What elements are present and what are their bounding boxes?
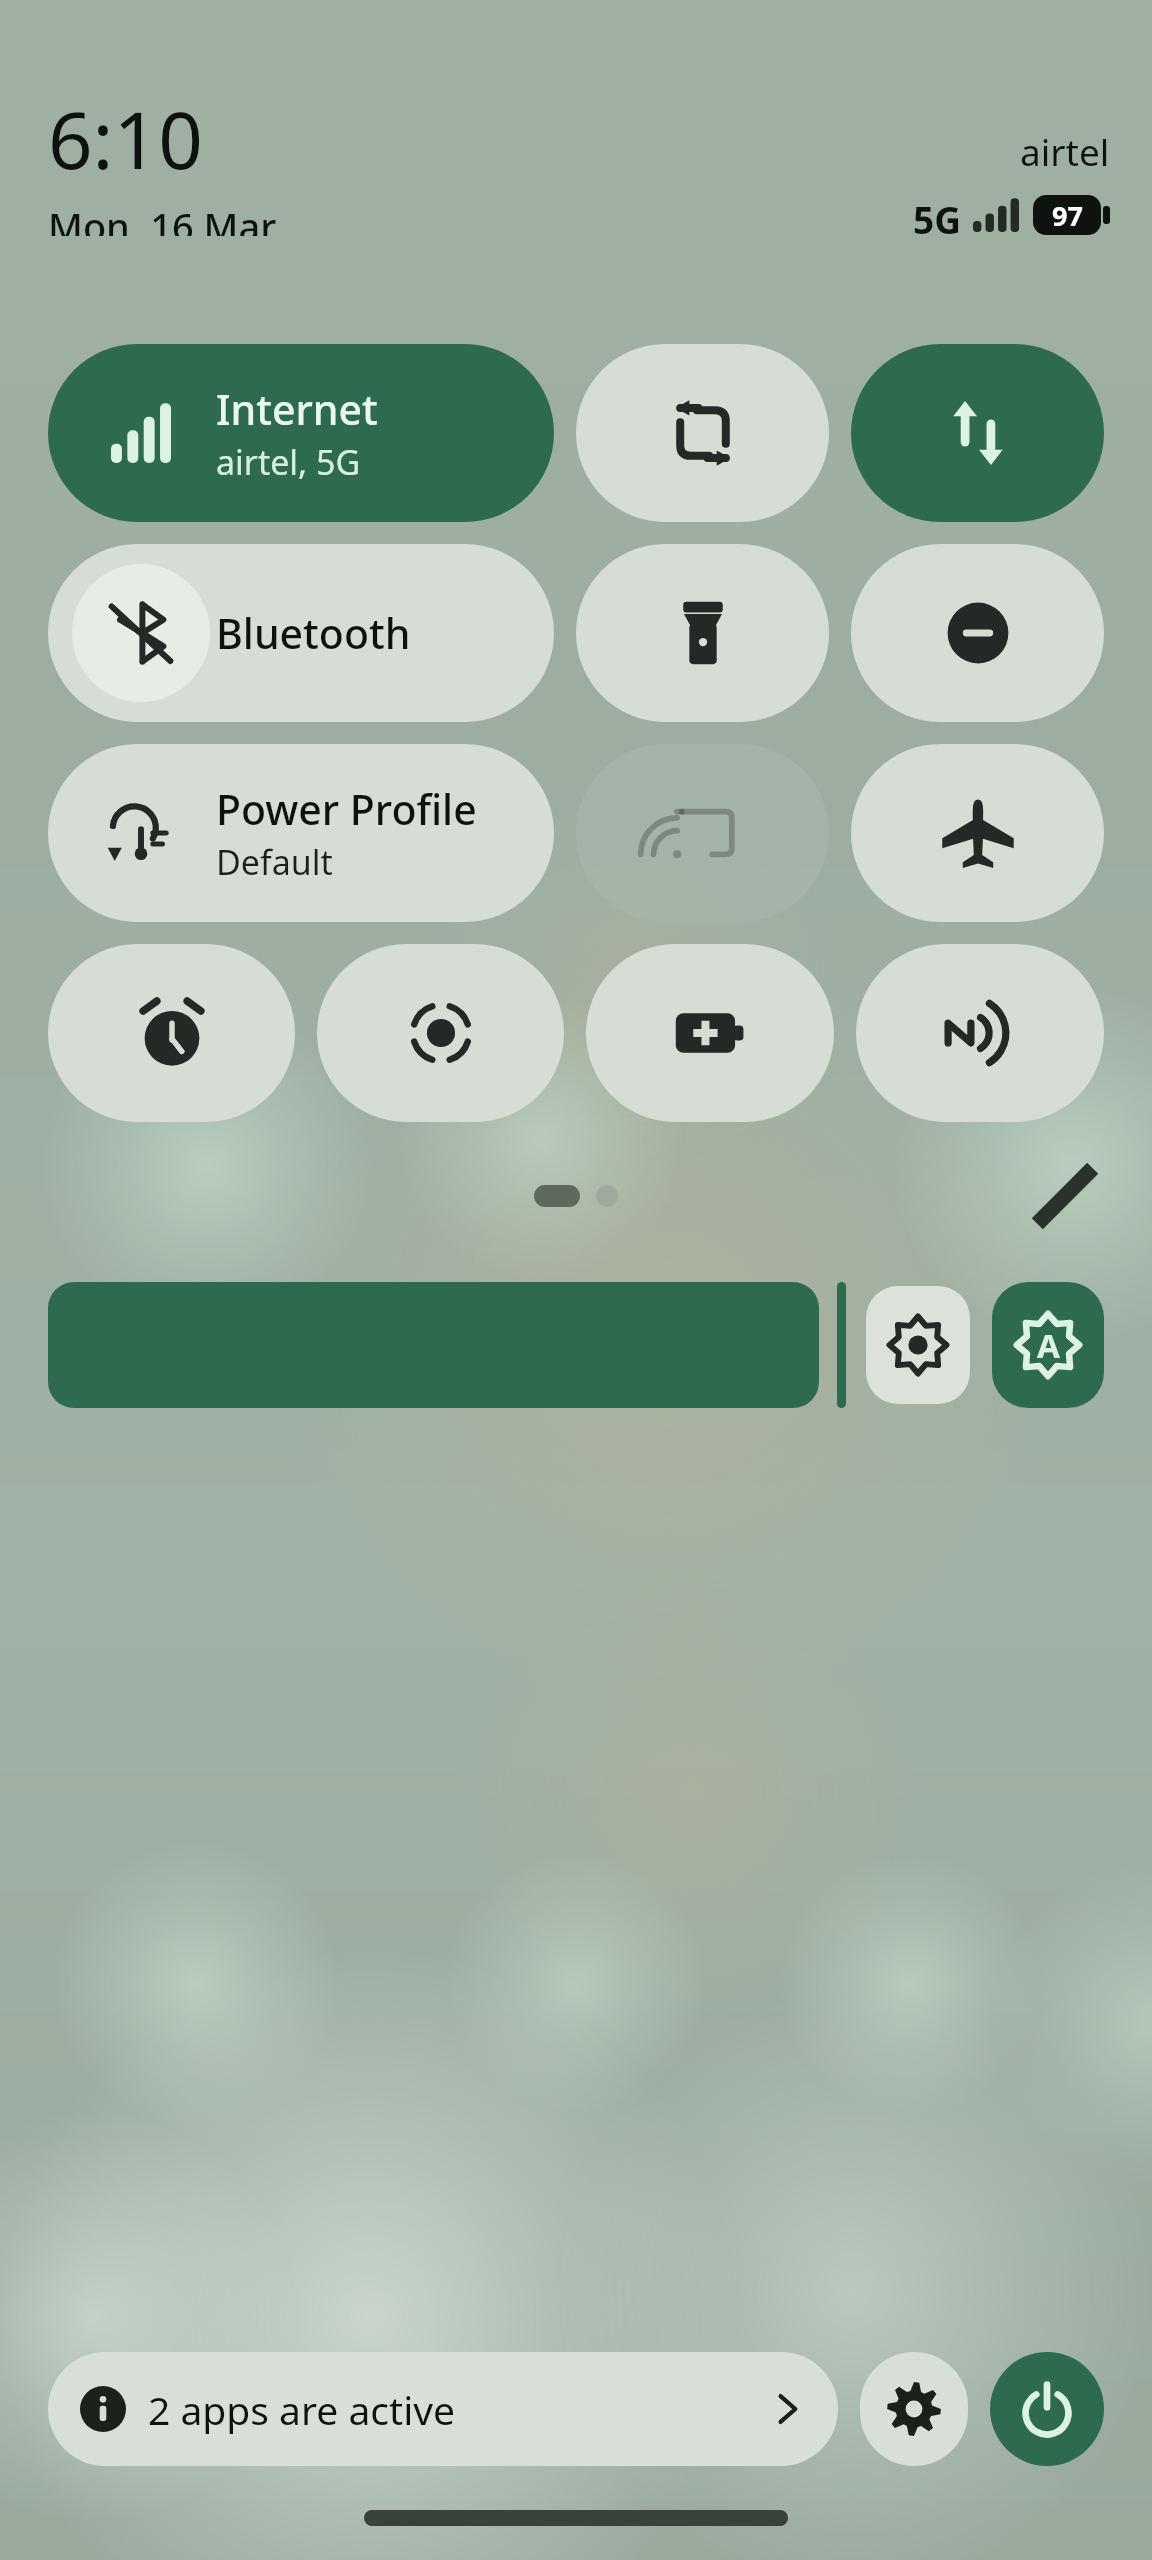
staticText: 6:10 [48, 86, 203, 192]
button[interactable]: Flashlight [576, 544, 829, 722]
button[interactable]: Cast screen [576, 744, 829, 922]
button[interactable]: Settings [860, 2352, 968, 2466]
button[interactable]: Focus mode [317, 944, 564, 1122]
button[interactable]: Airplane mode [851, 744, 1104, 922]
button[interactable]: Do not disturb [851, 544, 1104, 722]
staticText: Power Profile [216, 781, 477, 837]
button[interactable]: Brightness [48, 1282, 819, 1408]
staticText: airtel, 5G [216, 439, 361, 485]
button[interactable]: Adaptive brightness [992, 1282, 1104, 1408]
staticText: Bluetooth [216, 605, 411, 661]
button[interactable]: Internet [48, 344, 554, 522]
staticText: 2 apps are active [148, 2383, 456, 2436]
button[interactable]: Auto rotate [576, 344, 829, 522]
button[interactable]: 2 apps are active [48, 2352, 838, 2466]
button[interactable]: Power [990, 2352, 1104, 2466]
button[interactable]: Brightness settings [866, 1286, 970, 1404]
button[interactable]: Power Profile [48, 744, 554, 922]
staticText: 5G [913, 194, 961, 236]
staticText: Internet [216, 381, 378, 437]
staticText: airtel [1020, 126, 1110, 176]
staticText: Mon, 16 Mar [48, 200, 277, 236]
staticText: Default [216, 839, 333, 885]
button[interactable]: Alarm [48, 944, 295, 1122]
staticText: A [1037, 1323, 1060, 1368]
button[interactable]: NFC [856, 944, 1104, 1122]
staticText: 97 [1052, 197, 1083, 234]
button[interactable]: Edit tiles [1022, 1158, 1108, 1234]
button[interactable]: Bluetooth [48, 544, 554, 722]
button[interactable]: Battery saver [586, 944, 834, 1122]
button[interactable]: Mobile data [851, 344, 1104, 522]
